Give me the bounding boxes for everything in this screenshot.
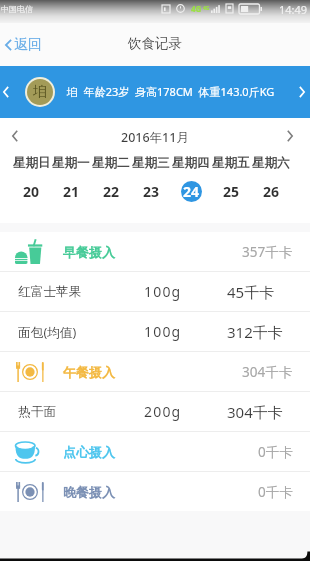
- staticText: 24: [183, 182, 200, 201]
- staticText: 20: [23, 182, 40, 201]
- button[interactable]: 22: [101, 181, 122, 202]
- staticText: 304千卡: [242, 363, 293, 381]
- staticText: 14:49: [279, 2, 308, 17]
- staticText: 星期一: [52, 155, 90, 171]
- staticText: 22: [103, 182, 120, 201]
- staticText: 午餐摄入: [63, 364, 115, 380]
- staticText: 4G: [203, 5, 210, 12]
- staticText: 星期二: [92, 155, 130, 171]
- staticText: 45千卡: [227, 282, 275, 302]
- staticText: 点心摄入: [63, 444, 115, 460]
- button[interactable]: 21: [61, 181, 82, 202]
- staticText: 垍: [33, 83, 47, 101]
- staticText: 中国电信: [1, 4, 33, 14]
- staticText: 星期五: [212, 155, 250, 171]
- staticText: 23: [143, 182, 160, 201]
- staticText: 0千卡: [258, 443, 293, 461]
- staticText: 饮食记录: [128, 35, 182, 52]
- button[interactable]: Next month: [275, 119, 310, 153]
- staticText: 面包(均值): [18, 323, 77, 340]
- button[interactable]: 早餐摄入: [0, 232, 310, 271]
- staticText: 星期日: [13, 155, 51, 171]
- staticText: 红富士苹果: [18, 284, 82, 300]
- button[interactable]: 返回: [0, 28, 52, 62]
- button[interactable]: 面包(均值): [0, 312, 310, 351]
- staticText: 星期六: [252, 155, 290, 171]
- button[interactable]: 红富士苹果: [0, 272, 310, 311]
- staticText: 2016年11月: [121, 129, 189, 146]
- staticText: 304千卡: [227, 402, 283, 422]
- staticText: 晚餐摄入: [63, 484, 115, 500]
- staticText: 21: [63, 182, 80, 201]
- staticText: 357千卡: [242, 243, 293, 261]
- button[interactable]: 热干面: [0, 392, 310, 431]
- button[interactable]: 24: [181, 181, 202, 202]
- button[interactable]: 20: [21, 181, 42, 202]
- staticText: 100g: [144, 322, 182, 341]
- staticText: 25: [223, 182, 240, 201]
- button[interactable]: 23: [141, 181, 162, 202]
- button[interactable]: 26: [261, 181, 282, 202]
- button[interactable]: 25: [221, 181, 242, 202]
- button[interactable]: Previous month: [0, 119, 30, 153]
- staticText: 早餐摄入: [63, 244, 115, 260]
- staticText: 0千卡: [258, 483, 293, 501]
- staticText: 200g: [144, 402, 182, 421]
- staticText: 4G: [191, 3, 202, 14]
- staticText: 100g: [144, 282, 182, 301]
- staticText: 星期三: [132, 155, 170, 171]
- staticText: 热干面: [18, 404, 57, 420]
- staticText: 返回: [14, 36, 42, 54]
- staticText: 26: [263, 182, 280, 201]
- staticText: 312千卡: [227, 322, 283, 342]
- staticText: 垍 年龄23岁 身高178CM 体重143.0斤KG: [67, 84, 275, 99]
- staticText: 星期四: [172, 155, 210, 171]
- button[interactable]: 垍: [0, 66, 310, 118]
- button[interactable]: 午餐摄入: [0, 352, 310, 391]
- button[interactable]: 晚餐摄入: [0, 472, 310, 511]
- button[interactable]: 点心摄入: [0, 432, 310, 471]
